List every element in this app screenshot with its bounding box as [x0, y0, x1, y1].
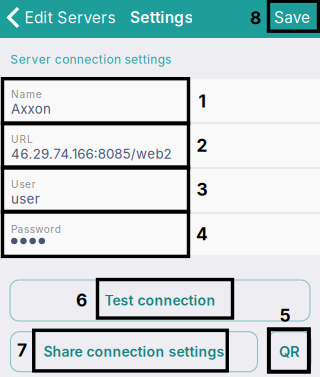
staticText: 46.29.74.166:8085/web2	[11, 146, 172, 162]
staticText: Test connection	[104, 292, 215, 309]
button[interactable]: Share connection settings	[10, 332, 257, 372]
staticText: user	[11, 191, 40, 207]
staticText: Password	[11, 223, 61, 235]
button[interactable]: URL	[0, 123, 320, 167]
staticText: 2	[196, 135, 207, 156]
staticText: URL	[11, 133, 33, 145]
staticText: Server connection settings	[10, 52, 171, 67]
staticText: Share connection settings	[43, 343, 224, 360]
button[interactable]: Scan QR code	[268, 332, 311, 372]
button[interactable]: Edit Servers	[6, 2, 126, 32]
button[interactable]: Password	[0, 213, 320, 257]
staticText: 6	[76, 290, 87, 311]
staticText: Edit Servers	[25, 8, 115, 27]
staticText: 4	[196, 223, 208, 244]
staticText: Axxon	[11, 101, 51, 117]
button[interactable]: Name	[0, 78, 320, 122]
staticText: QR	[279, 343, 300, 360]
button[interactable]: Settings	[127, 3, 195, 31]
button[interactable]: Test connection	[10, 280, 310, 321]
staticText: Save	[274, 8, 310, 27]
button[interactable]: User	[0, 168, 320, 212]
staticText: 5	[279, 305, 290, 326]
button[interactable]: Save	[270, 3, 314, 31]
staticText: 3	[196, 179, 207, 200]
staticText: 7	[17, 340, 27, 361]
staticText: User	[11, 178, 36, 190]
staticText: 8	[250, 7, 261, 28]
staticText: 1	[198, 91, 205, 112]
staticText: Name	[11, 88, 42, 100]
staticText: Settings	[130, 8, 192, 27]
